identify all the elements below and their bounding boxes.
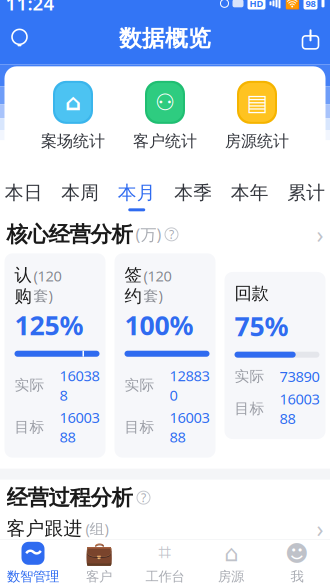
staticText: 房源统计 — [225, 131, 289, 151]
staticText: 来访 — [133, 558, 167, 579]
staticText: 数智管理 — [7, 568, 59, 585]
staticText: ⌂ — [65, 89, 81, 115]
staticText: 回款 — [234, 283, 268, 304]
staticText: › — [316, 514, 323, 544]
staticText: 888 — [277, 559, 307, 577]
staticText: 房源 — [218, 568, 244, 585]
staticText: 💼 — [85, 540, 113, 566]
staticText: 实际 — [124, 376, 154, 394]
staticText: 11:24 — [5, 0, 54, 16]
staticText: 实际 — [14, 376, 44, 394]
staticText: 客户跟进 — [6, 517, 82, 540]
staticText: 客户 — [86, 568, 112, 585]
staticText: 案场统计 — [41, 131, 105, 151]
staticText: 本日 — [5, 181, 43, 204]
staticText: 认购 — [14, 264, 31, 307]
staticText: 75% — [234, 308, 288, 344]
staticText: 🛜 — [284, 0, 299, 10]
staticText: (组) — [85, 519, 108, 538]
staticText: 1600388 — [169, 408, 209, 447]
button[interactable]: ⌂ — [198, 540, 264, 586]
staticText: 73890 — [279, 367, 319, 386]
button[interactable]: 本日 — [0, 175, 52, 217]
button[interactable]: 本周 — [52, 175, 108, 217]
staticText: ? — [141, 490, 146, 506]
button[interactable]: 通知 — [0, 18, 39, 58]
staticText: 累计 — [287, 181, 325, 204]
staticText: 本季 — [174, 181, 212, 204]
button[interactable]: 累计 — [278, 175, 330, 217]
staticText: (万) — [135, 224, 161, 245]
button[interactable]: 本年 — [221, 175, 278, 217]
staticText: 125% — [14, 307, 83, 343]
staticText: 98 — [305, 0, 315, 10]
staticText: ▤ — [246, 89, 267, 115]
staticText: 目标 — [124, 418, 154, 436]
button[interactable]: 本月 — [108, 175, 165, 217]
button[interactable]: 认购 — [4, 253, 105, 458]
staticText: 经营过程分析 — [6, 484, 132, 511]
staticText: 160388 — [59, 366, 99, 405]
button[interactable]: 回款 — [224, 272, 325, 439]
button[interactable]: ⌂ — [27, 80, 119, 151]
staticText: 工作台 — [145, 568, 184, 585]
staticText: 1600388 — [59, 408, 99, 447]
staticText: 100% — [124, 307, 193, 343]
staticText: 客户统计 — [133, 131, 197, 151]
button[interactable]: 签约 — [114, 253, 215, 458]
staticText: › — [316, 219, 323, 249]
button[interactable]: 分享 — [290, 18, 330, 58]
button[interactable]: ▤ — [211, 80, 303, 151]
button[interactable]: 本季 — [165, 175, 221, 217]
staticText: ⚇ — [155, 89, 175, 115]
staticText: 本周 — [61, 181, 99, 204]
staticText: ? — [169, 226, 174, 242]
staticText: 核心经营分析 — [6, 221, 132, 247]
button[interactable]: ⚇ — [119, 80, 211, 151]
staticText: 本年 — [231, 181, 269, 204]
button[interactable]: 〜 — [0, 540, 66, 586]
button[interactable]: 💼 — [66, 540, 132, 586]
staticText: 目标 — [234, 400, 264, 418]
button[interactable]: ⌗ — [132, 540, 198, 586]
staticText: 签约 — [124, 264, 141, 307]
staticText: 128830 — [169, 366, 209, 405]
button[interactable]: ☻ — [264, 540, 330, 586]
button[interactable]: 客户跟进 — [0, 516, 330, 542]
staticText: 1600388 — [279, 389, 319, 428]
staticText: 新增 — [23, 558, 57, 579]
button[interactable]: 核心经营分析 — [0, 217, 330, 251]
staticText: 目标 — [14, 418, 44, 436]
staticText: 我 — [290, 568, 303, 585]
staticText: (120套) — [33, 266, 61, 305]
staticText: 数据概览 — [119, 24, 211, 52]
staticText: ⌗ — [158, 542, 171, 564]
staticText: 实际 — [234, 367, 264, 385]
staticText: HD — [249, 0, 263, 10]
staticText: ⌂ — [224, 540, 238, 566]
staticText: 〜 — [24, 543, 41, 564]
staticText: 本月 — [118, 181, 156, 204]
staticText: ☻ — [285, 540, 309, 566]
staticText: (120套) — [143, 266, 171, 305]
